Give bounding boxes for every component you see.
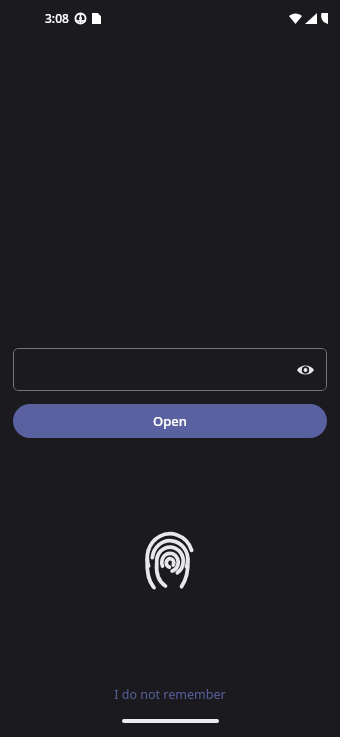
- staticText: I do not remember: [114, 686, 226, 703]
- button[interactable]: Open: [13, 404, 327, 438]
- staticText: 3:08: [45, 10, 69, 26]
- button[interactable]: Show password: [13, 348, 327, 391]
- staticText: Open: [153, 412, 187, 430]
- button[interactable]: I do not remember: [106, 684, 234, 705]
- button[interactable]: Unlock with fingerprint: [137, 524, 203, 594]
- button[interactable]: Show password: [290, 355, 320, 385]
